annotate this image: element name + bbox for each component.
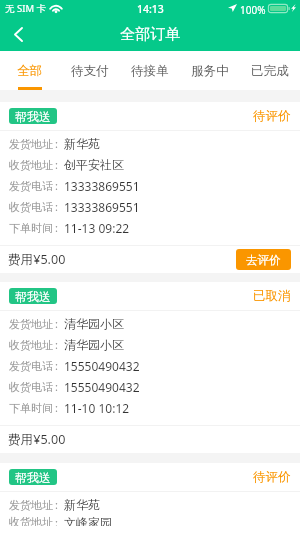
- button[interactable]: 帮我送: [0, 102, 300, 273]
- staticText: 待接单: [131, 63, 169, 79]
- staticText: 无 SIM 卡: [5, 2, 46, 15]
- staticText: 收货地址: [9, 515, 53, 526]
- staticText: 待评价: [253, 108, 291, 124]
- staticText: 费用¥5.00: [8, 431, 66, 448]
- staticText: :: [55, 178, 58, 193]
- staticText: 14:13: [137, 2, 164, 16]
- button[interactable]: 帮我送: [0, 282, 300, 453]
- staticText: :: [55, 515, 58, 526]
- staticText: :: [55, 358, 58, 373]
- staticText: 新华苑: [64, 497, 100, 512]
- staticText: 去评价: [246, 253, 281, 267]
- staticText: 发货地址: [9, 317, 53, 331]
- staticText: 帮我送: [15, 470, 51, 485]
- staticText: 清华园小区: [64, 337, 124, 352]
- staticText: :: [55, 136, 58, 151]
- staticText: 服务中: [191, 63, 229, 79]
- staticText: 15550490432: [64, 379, 140, 395]
- staticText: 新华苑: [64, 136, 100, 151]
- staticText: 待评价: [253, 469, 291, 485]
- staticText: 下单时间: [9, 401, 53, 415]
- staticText: 发货地址: [9, 137, 53, 151]
- button[interactable]: 待接单: [120, 51, 180, 90]
- staticText: :: [55, 157, 58, 172]
- staticText: 15550490432: [64, 358, 140, 374]
- staticText: 收货地址: [9, 338, 53, 352]
- staticText: 发货地址: [9, 498, 53, 512]
- staticText: :: [55, 400, 58, 415]
- staticText: 收货电话: [9, 380, 53, 394]
- button[interactable]: 去评价: [236, 249, 291, 270]
- button[interactable]: 全部: [0, 51, 60, 90]
- staticText: :: [55, 337, 58, 352]
- staticText: 全部: [17, 63, 43, 79]
- staticText: 下单时间: [9, 221, 53, 235]
- staticText: :: [55, 199, 58, 214]
- button[interactable]: Back: [0, 18, 36, 51]
- staticText: :: [55, 220, 58, 235]
- staticText: 全部订单: [120, 25, 180, 44]
- staticText: 发货电话: [9, 179, 53, 193]
- staticText: 文峰家园: [64, 515, 112, 526]
- staticText: 创平安社区: [64, 157, 124, 172]
- staticText: 待支付: [71, 63, 109, 79]
- button[interactable]: 帮我送: [0, 463, 300, 533]
- staticText: 收货地址: [9, 158, 53, 172]
- staticText: 已完成: [251, 63, 289, 79]
- staticText: 已取消: [253, 288, 291, 304]
- staticText: 11-10 10:12: [64, 400, 130, 416]
- staticText: 费用¥5.00: [8, 251, 66, 268]
- button[interactable]: 待支付: [60, 51, 120, 90]
- staticText: 帮我送: [15, 109, 51, 124]
- button[interactable]: 已完成: [240, 51, 300, 90]
- staticText: :: [55, 316, 58, 331]
- staticText: 13333869551: [64, 199, 140, 215]
- staticText: 收货电话: [9, 200, 53, 214]
- staticText: 清华园小区: [64, 316, 124, 331]
- staticText: 发货电话: [9, 359, 53, 373]
- staticText: 100%: [240, 3, 266, 17]
- staticText: :: [55, 497, 58, 512]
- staticText: 11-13 09:22: [64, 220, 130, 236]
- staticText: 帮我送: [15, 289, 51, 304]
- staticText: :: [55, 379, 58, 394]
- staticText: 13333869551: [64, 178, 140, 194]
- button[interactable]: 服务中: [180, 51, 240, 90]
